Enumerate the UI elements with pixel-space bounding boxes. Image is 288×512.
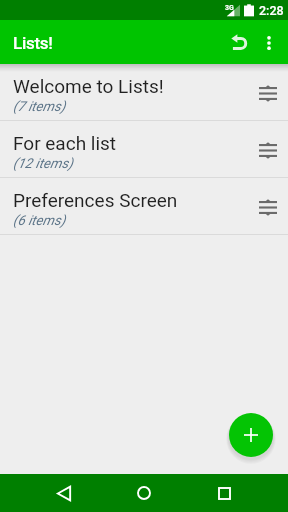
- staticText: (12 items): [13, 155, 73, 171]
- button[interactable]: For each list: [0, 121, 288, 178]
- button[interactable]: Add list: [229, 413, 273, 457]
- staticText: For each list: [13, 132, 117, 154]
- button[interactable]: Recent apps: [184, 474, 264, 512]
- button[interactable]: Undo: [212, 22, 252, 62]
- staticText: Preferences Screen: [13, 189, 178, 211]
- button[interactable]: More options: [252, 24, 288, 60]
- button[interactable]: Preferences Screen: [0, 178, 288, 235]
- staticText: Welcome to Lists!: [13, 75, 164, 97]
- staticText: 2:28: [259, 3, 284, 18]
- button[interactable]: Welcome to Lists!: [0, 64, 288, 121]
- staticText: (6 items): [13, 212, 66, 228]
- staticText: (7 items): [13, 98, 66, 114]
- button[interactable]: Home: [104, 474, 184, 512]
- staticText: 3G: [225, 4, 234, 12]
- button[interactable]: Back: [24, 474, 104, 512]
- staticText: Lists!: [13, 33, 53, 53]
